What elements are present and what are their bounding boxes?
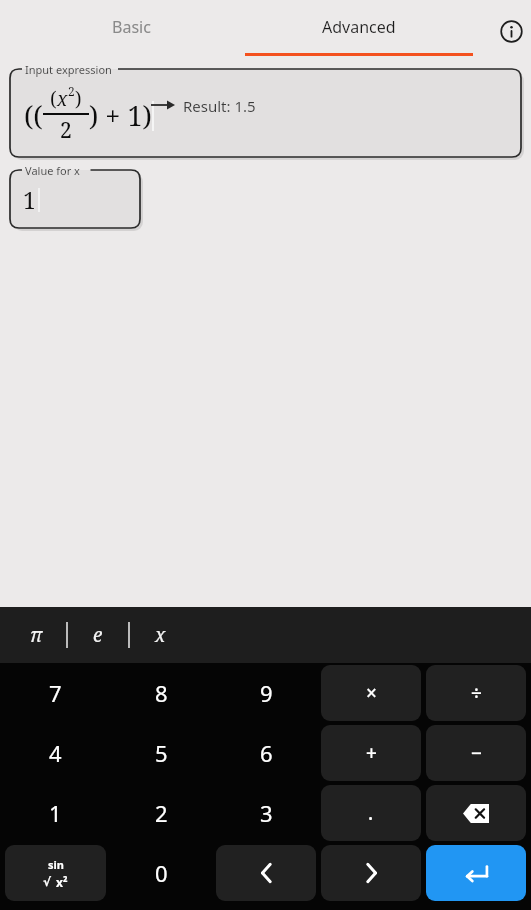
staticText: x <box>155 622 166 648</box>
button[interactable]: 6 <box>216 725 316 781</box>
staticText: × <box>366 680 377 706</box>
button[interactable]: Multiply <box>321 665 421 721</box>
staticText: 1 <box>23 184 36 215</box>
staticText: sin <box>48 857 64 872</box>
button[interactable]: Advanced <box>245 0 473 54</box>
staticText: ÷ <box>471 680 482 706</box>
staticText: e <box>93 622 103 648</box>
staticText: π <box>30 622 43 648</box>
button[interactable]: Plus <box>321 725 421 781</box>
staticText: Basic <box>112 16 151 38</box>
button[interactable]: Basic <box>17 0 245 54</box>
button[interactable]: Move cursor left <box>216 845 316 901</box>
button[interactable]: Decimal point <box>321 785 421 841</box>
staticText: 2 <box>68 83 75 99</box>
staticText: 3 <box>260 798 273 828</box>
staticText: . <box>368 800 374 826</box>
button[interactable]: 9 <box>216 665 316 721</box>
staticText: Result: 1.5 <box>183 96 256 116</box>
button[interactable]: 2 <box>111 785 211 841</box>
button[interactable]: 0 <box>111 845 211 901</box>
staticText: Input expression <box>25 62 112 77</box>
button[interactable]: 8 <box>111 665 211 721</box>
staticText: 5 <box>155 738 168 768</box>
staticText: + <box>366 740 377 766</box>
button[interactable]: 1 <box>5 785 106 841</box>
button[interactable]: 5 <box>111 725 211 781</box>
staticText: 2 <box>155 798 168 828</box>
button[interactable]: Value for x <box>10 170 140 228</box>
staticText: √ <box>43 875 52 889</box>
button[interactable]: Divide <box>426 665 526 721</box>
staticText: 6 <box>260 738 273 768</box>
staticText: 7 <box>49 678 62 708</box>
button[interactable]: Functions <box>5 845 106 901</box>
staticText: (( <box>24 97 43 134</box>
staticText: − <box>471 740 482 766</box>
button[interactable]: 3 <box>216 785 316 841</box>
button[interactable]: Info <box>489 9 531 53</box>
button[interactable]: π <box>6 607 66 663</box>
button[interactable]: Backspace <box>426 785 526 841</box>
staticText: Value for x <box>25 163 80 178</box>
staticText: 2 <box>60 116 72 145</box>
staticText: 4 <box>49 738 62 768</box>
staticText: x² <box>56 874 68 890</box>
staticText: Advanced <box>322 16 396 38</box>
button[interactable]: x <box>130 607 190 663</box>
button[interactable]: Move cursor right <box>321 845 421 901</box>
staticText: ) + 1) <box>89 97 152 134</box>
staticText: 1 <box>49 798 62 828</box>
button[interactable]: Enter <box>426 845 526 901</box>
button[interactable]: e <box>68 607 128 663</box>
staticText: ) <box>75 86 82 112</box>
staticText: 9 <box>260 678 273 708</box>
button[interactable]: 7 <box>5 665 106 721</box>
staticText: x <box>57 86 68 112</box>
staticText: 8 <box>155 678 168 708</box>
staticText: ( <box>50 86 57 112</box>
staticText: 0 <box>155 858 168 888</box>
button[interactable]: Minus <box>426 725 526 781</box>
button[interactable]: 4 <box>5 725 106 781</box>
button[interactable]: Input expression <box>10 69 521 157</box>
